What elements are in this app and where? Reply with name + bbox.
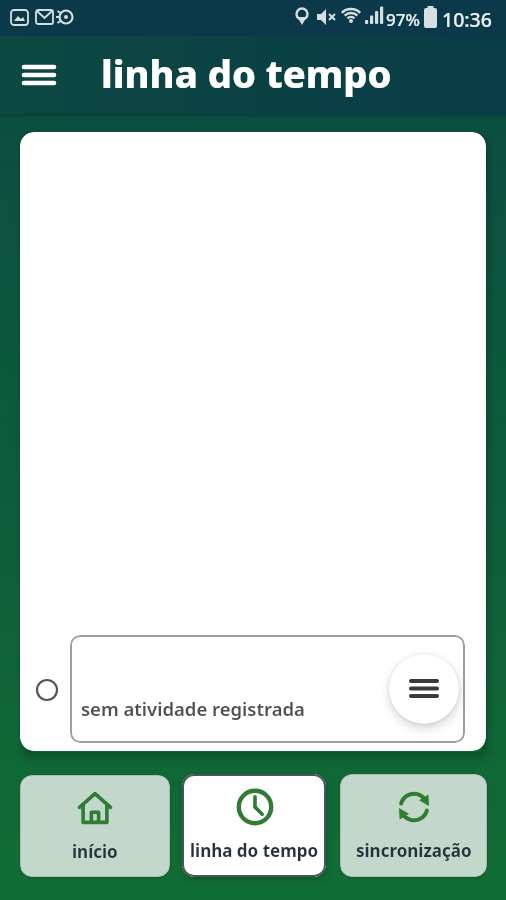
staticText: início [72, 840, 118, 863]
staticText: linha do tempo [190, 839, 319, 862]
button[interactable] [389, 654, 459, 724]
button[interactable] [16, 56, 62, 96]
staticText: linha do tempo [101, 47, 392, 99]
staticText: sincronização [356, 839, 472, 862]
staticText: 10:36 [442, 6, 492, 33]
staticText: 97% [386, 8, 420, 31]
button[interactable]: linha do tempo [182, 774, 326, 877]
button[interactable]: início [20, 775, 170, 877]
button[interactable] [28, 671, 66, 709]
button[interactable]: sem atividade registrada [70, 635, 465, 743]
button[interactable]: sincronização [340, 774, 487, 877]
staticText: sem atividade registrada [81, 696, 305, 721]
